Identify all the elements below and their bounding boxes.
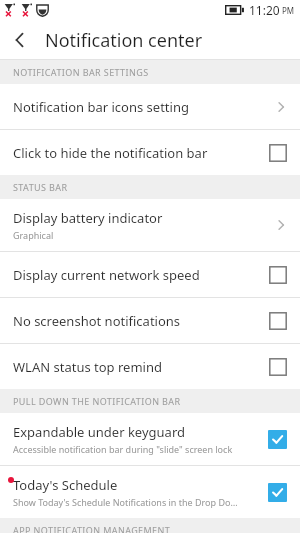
button[interactable]: WLAN status top remind xyxy=(0,344,300,389)
button[interactable]: Unchecked xyxy=(268,311,287,330)
staticText: Expandable under keyguard xyxy=(13,423,185,441)
button[interactable]: Notification bar icons setting xyxy=(0,84,300,129)
staticText: Display current network speed xyxy=(13,266,200,284)
button[interactable]: Unchecked xyxy=(268,357,287,376)
staticText: Click to hide the notification bar xyxy=(13,144,208,162)
button[interactable]: Unchecked xyxy=(268,265,287,284)
staticText: 11:20 xyxy=(249,2,280,18)
staticText: NOTIFICATION BAR SETTINGS xyxy=(13,66,149,78)
button[interactable]: Today's Schedule xyxy=(0,466,300,518)
staticText: PULL DOWN THE NOTIFICATION BAR xyxy=(13,395,181,407)
staticText: Graphical xyxy=(13,229,54,241)
staticText: Display battery indicator xyxy=(13,209,163,227)
staticText: Today's Schedule xyxy=(13,476,118,494)
staticText: APP NOTIFICATION MANAGEMENT xyxy=(13,524,171,533)
staticText: PM xyxy=(282,5,295,16)
button[interactable]: Unchecked xyxy=(268,143,287,162)
staticText: Notification center xyxy=(45,28,203,53)
staticText: WLAN status top remind xyxy=(13,358,162,376)
button[interactable]: Display battery indicator xyxy=(0,199,300,251)
button[interactable]: Expandable under keyguard xyxy=(0,413,300,465)
staticText: Notification bar icons setting xyxy=(13,98,189,116)
staticText: Show Today's Schedule Notifications in t… xyxy=(13,496,238,508)
staticText: Accessible notification bar during "slid… xyxy=(13,443,233,455)
button[interactable]: No screenshot notifications xyxy=(0,298,300,343)
button[interactable]: Back xyxy=(0,20,40,60)
staticText: No screenshot notifications xyxy=(13,312,181,330)
staticText: STATUS BAR xyxy=(13,181,68,193)
button[interactable]: Checked xyxy=(268,483,287,502)
button[interactable]: Click to hide the notification bar xyxy=(0,130,300,175)
button[interactable]: Checked xyxy=(268,430,287,449)
button[interactable]: Display current network speed xyxy=(0,252,300,297)
